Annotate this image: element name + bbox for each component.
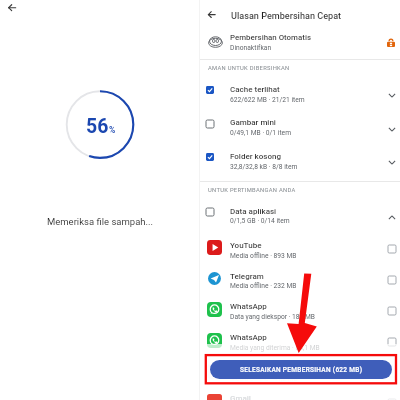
button[interactable]: WhatsApp xyxy=(200,321,400,351)
staticText: Folder kosong xyxy=(230,152,281,161)
staticText: 0/1,5 GB · 0/14 item xyxy=(230,217,290,225)
staticText: 32,8/32,8 kB · 8/8 item xyxy=(230,163,298,171)
staticText: YouTube xyxy=(230,241,262,250)
staticText: Instagram xyxy=(230,364,267,373)
staticText: Data yang diekspor · 189 MB xyxy=(230,313,315,321)
button[interactable]: YouTube xyxy=(200,228,400,258)
staticText: Media offline · 893 MB xyxy=(230,252,297,260)
staticText: Data aplikasi xyxy=(230,207,277,216)
button[interactable]: WhatsApp xyxy=(200,290,400,320)
staticText: WhatsApp xyxy=(230,333,267,342)
staticText: Telegram xyxy=(230,272,264,281)
staticText: Media offline · 232 MB xyxy=(230,282,297,290)
staticText: Dinonaktifkan xyxy=(230,44,272,52)
button[interactable]: Gmail xyxy=(200,383,400,400)
button[interactable]: Cache terlihat xyxy=(200,73,400,106)
staticText: Pembersihan Otomatis xyxy=(230,33,311,42)
staticText: Media yang diterima · 84,1 MB xyxy=(230,344,320,352)
staticText: Media offline · 41,2 MB xyxy=(230,375,298,383)
button[interactable]: SELESAIKAN PEMBERSIHAN (622 MB) xyxy=(210,360,392,379)
staticText: SELESAIKAN PEMBERSIHAN (622 MB) xyxy=(240,366,363,374)
staticText: 0/49,1 MB · 0/1 item xyxy=(230,129,291,137)
staticText: 622/622 MB · 21/21 item xyxy=(230,96,305,104)
staticText: Gambar mini xyxy=(230,118,276,127)
staticText: WhatsApp xyxy=(230,302,267,311)
button[interactable]: Back xyxy=(4,0,20,16)
button[interactable]: Back xyxy=(204,7,220,23)
button[interactable]: Instagram xyxy=(200,352,400,382)
button[interactable]: Pembersihan Otomatis xyxy=(200,28,400,59)
button[interactable]: Data aplikasi xyxy=(200,195,400,228)
button[interactable]: Folder kosong xyxy=(200,140,400,173)
staticText: Memeriksa file sampah... xyxy=(0,216,200,227)
staticText: UNTUK PERTIMBANGAN ANDA xyxy=(208,187,296,194)
staticText: Ulasan Pembersihan Cepat xyxy=(231,11,342,22)
button[interactable]: Gambar mini xyxy=(200,107,400,140)
staticText: % xyxy=(109,125,116,135)
staticText: Cache terlihat xyxy=(230,85,280,94)
staticText: 56 xyxy=(86,115,109,138)
staticText: AMAN UNTUK DIBERSIHKAN xyxy=(208,65,290,72)
staticText: Gmail xyxy=(230,394,251,400)
button[interactable]: Telegram xyxy=(200,259,400,289)
